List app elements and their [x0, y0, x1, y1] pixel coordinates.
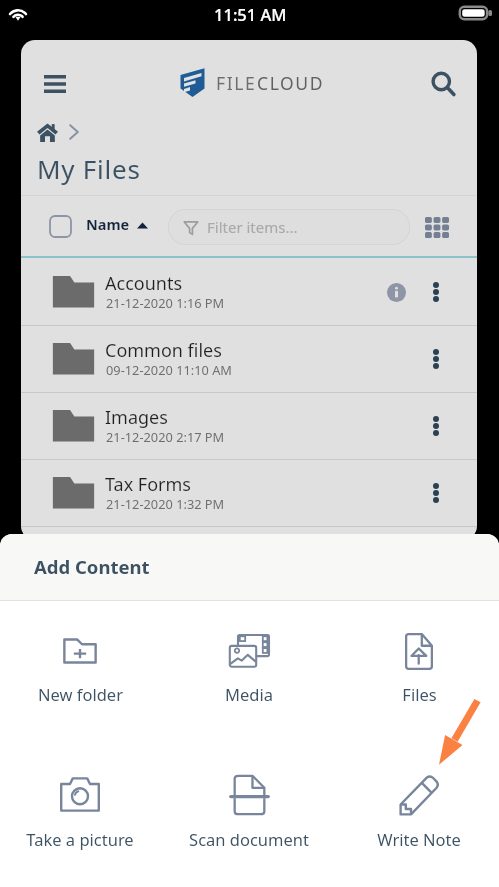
button[interactable]: Common files — [21, 325, 477, 392]
staticText: Add Content — [34, 554, 150, 579]
button[interactable]: Write Note — [337, 751, 499, 855]
staticText: 11:51 AM — [214, 3, 287, 25]
staticText: 21-12-2020 1:32 PM — [106, 495, 225, 512]
button[interactable]: Take a picture — [0, 750, 162, 854]
button[interactable]: Tax Forms — [21, 459, 477, 526]
staticText: CLOUD — [257, 71, 325, 95]
button[interactable]: Accounts — [21, 258, 477, 325]
staticText: Images — [105, 405, 168, 430]
button[interactable]: Filter items... — [168, 209, 410, 245]
staticText: Tax Forms — [105, 472, 191, 497]
button[interactable]: Scan document — [167, 751, 331, 855]
staticText: Files — [402, 683, 437, 705]
button[interactable]: More options — [419, 342, 452, 375]
staticText: Take a picture — [26, 828, 134, 850]
staticText: Common files — [105, 338, 222, 363]
button[interactable]: Select all — [45, 211, 75, 241]
button[interactable]: Grid view — [420, 210, 454, 244]
staticText: Media — [225, 683, 273, 705]
button[interactable]: More options — [419, 409, 452, 442]
staticText: 21-12-2020 1:16 PM — [106, 294, 225, 311]
button[interactable]: More options — [419, 275, 452, 308]
button[interactable]: Images — [21, 392, 477, 459]
staticText: My Files — [37, 151, 141, 186]
button[interactable]: Home — [33, 118, 62, 147]
button[interactable]: Media — [167, 607, 331, 711]
button[interactable]: Files — [337, 607, 499, 711]
staticText: New folder — [38, 683, 123, 705]
button[interactable]: New folder — [0, 607, 162, 711]
staticText: Write Note — [377, 828, 461, 850]
button[interactable]: More options — [419, 476, 452, 509]
staticText: Name — [86, 214, 130, 234]
button[interactable]: Info — [381, 277, 412, 308]
staticText: Scan document — [189, 828, 309, 850]
staticText: 09-12-2020 11:10 AM — [106, 361, 232, 378]
button[interactable]: Name — [86, 214, 148, 234]
staticText: 21-12-2020 2:17 PM — [106, 428, 225, 445]
staticText: Accounts — [105, 271, 183, 296]
staticText: Filter items... — [207, 217, 298, 237]
button[interactable]: Menu — [36, 65, 74, 103]
button[interactable]: Search — [424, 65, 464, 105]
staticText: FILE — [216, 71, 257, 95]
